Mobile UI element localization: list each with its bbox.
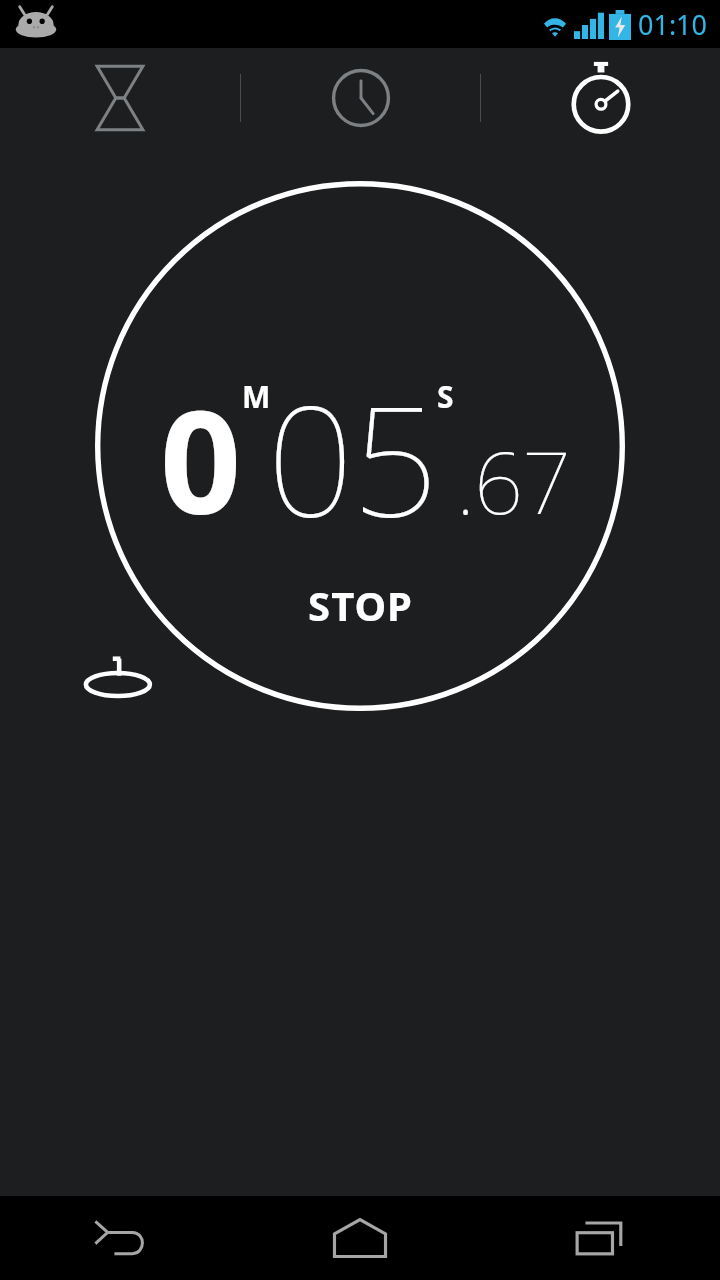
button[interactable]: Back — [0, 1196, 240, 1280]
staticText: STOP — [308, 578, 413, 632]
button[interactable]: Recent apps — [480, 1196, 720, 1280]
staticText: 05 — [267, 354, 437, 561]
staticText: S — [437, 376, 454, 417]
staticText: M — [242, 376, 271, 417]
button[interactable]: Home — [240, 1196, 480, 1280]
staticText: 0 — [160, 362, 242, 555]
button[interactable]: Clock — [241, 48, 480, 148]
button[interactable]: Timer — [0, 48, 240, 148]
button[interactable]: Stop stopwatch — [94, 180, 626, 712]
button[interactable]: Stopwatch — [481, 48, 720, 148]
button[interactable]: Lap — [82, 653, 160, 703]
staticText: .67 — [456, 422, 570, 539]
staticText: 01:10 — [638, 6, 708, 43]
